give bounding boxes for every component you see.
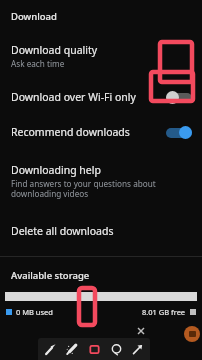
staticText: Download over Wi-Fi only <box>11 90 136 104</box>
staticText: Recommend downloads <box>11 125 130 139</box>
staticText: 8.01 GB free <box>142 307 186 317</box>
button[interactable]: Highlighter <box>63 340 81 358</box>
button[interactable]: Circle <box>107 340 125 358</box>
button[interactable]: Download over Wi-Fi only <box>0 86 202 108</box>
button[interactable]: Recommend downloads <box>0 121 202 143</box>
button[interactable]: Arrow <box>128 340 146 358</box>
staticText: Delete all downloads <box>11 224 114 238</box>
staticText: Download <box>11 10 57 23</box>
staticText: 0 MB used <box>16 307 53 317</box>
staticText: Ask each time <box>11 58 65 69</box>
staticText: Download quality <box>11 43 98 57</box>
button[interactable]: Profile <box>184 326 200 342</box>
button[interactable]: Pen <box>42 340 60 358</box>
staticText: Downloading help <box>11 163 101 177</box>
button[interactable]: Delete all downloads <box>0 220 202 242</box>
button[interactable]: Close <box>136 326 146 336</box>
button[interactable]: Download quality <box>0 39 202 73</box>
button[interactable]: Downloading help <box>0 159 202 204</box>
staticText: Available storage <box>11 269 90 282</box>
button[interactable]: Rectangle <box>85 340 103 358</box>
button[interactable]: Toggle on <box>166 126 192 139</box>
staticText: Find answers to your questions about dow… <box>11 178 192 200</box>
button[interactable]: Toggle off <box>166 91 192 104</box>
